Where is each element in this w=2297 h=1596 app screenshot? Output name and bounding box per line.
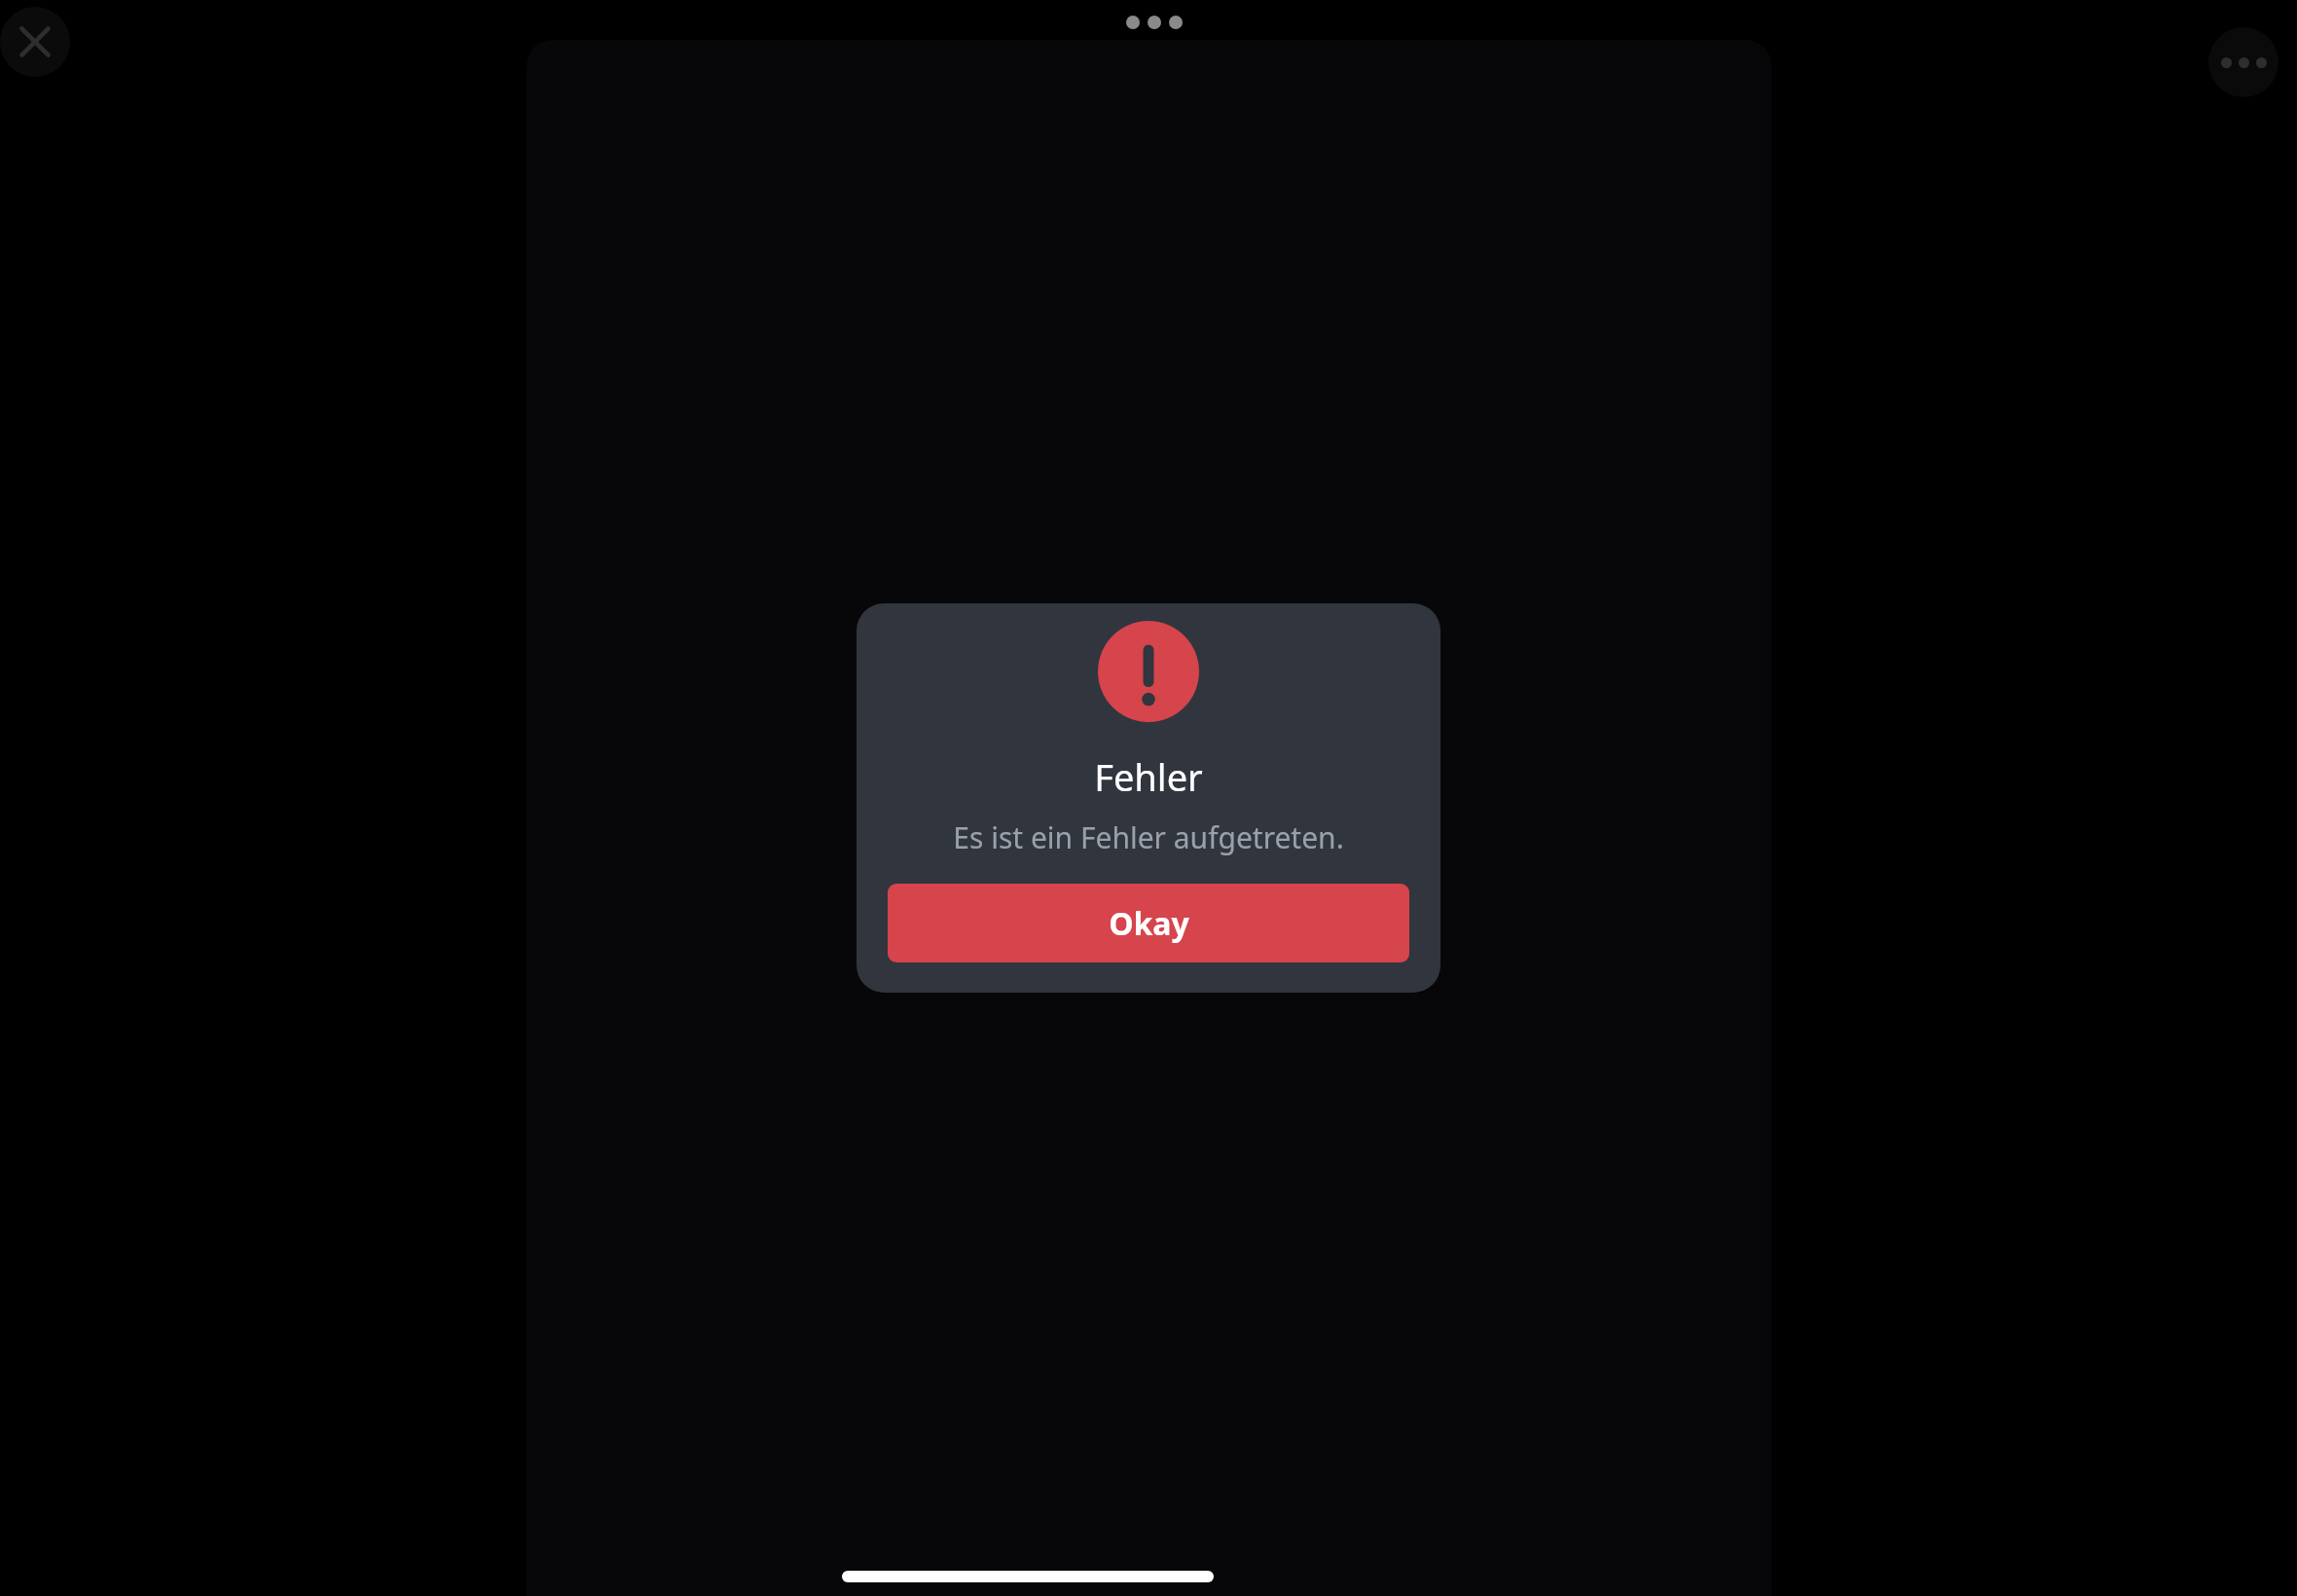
button[interactable]: More options <box>2208 27 2279 97</box>
staticText: Es ist ein Fehler aufgetreten. <box>884 817 1413 857</box>
button[interactable]: Okay <box>888 884 1409 962</box>
staticText: Fehler <box>1094 751 1203 802</box>
staticText: Okay <box>1109 902 1189 945</box>
button[interactable]: Close <box>0 7 70 77</box>
